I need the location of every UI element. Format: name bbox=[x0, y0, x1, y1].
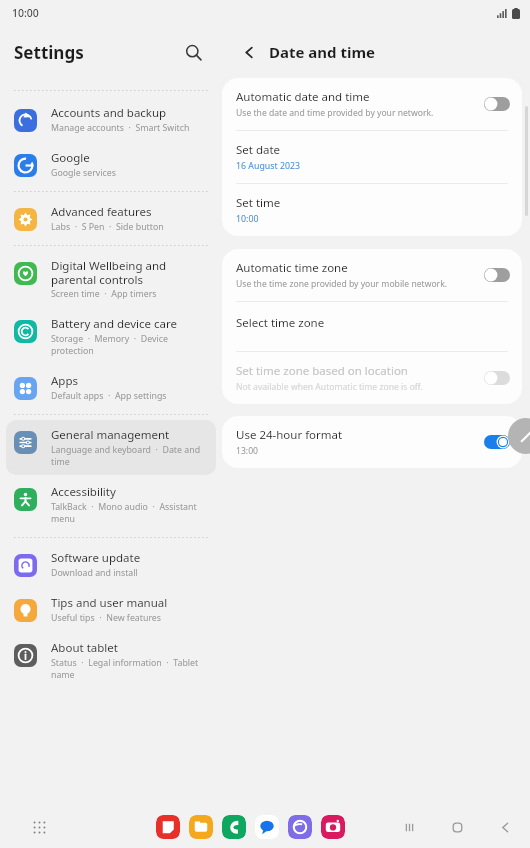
button[interactable]: messages bbox=[255, 815, 279, 839]
staticText: Default apps · App settings bbox=[51, 390, 167, 402]
staticText: TalkBack · Mono audio · Assistant menu bbox=[51, 501, 208, 525]
staticText: About tablet bbox=[51, 640, 118, 656]
button[interactable]: files bbox=[189, 815, 213, 839]
staticText: Use the date and time provided by your n… bbox=[236, 107, 434, 119]
button[interactable]: Accessibility bbox=[6, 477, 216, 532]
button[interactable]: Edit bbox=[508, 418, 530, 454]
button[interactable]: recents bbox=[396, 814, 422, 840]
staticText: Storage · Memory · Device protection bbox=[51, 333, 208, 357]
staticText: Accessibility bbox=[51, 484, 116, 500]
staticText: Language and keyboard · Date and time bbox=[51, 444, 208, 468]
button[interactable]: Battery and device care bbox=[6, 309, 216, 364]
staticText: Set time zone based on location bbox=[236, 363, 408, 379]
staticText: 16 August 2023 bbox=[236, 160, 301, 172]
button[interactable]: back bbox=[492, 814, 518, 840]
button[interactable]: camera bbox=[321, 815, 345, 839]
button[interactable]: Set time bbox=[222, 184, 522, 236]
staticText: Labs · S Pen · Side button bbox=[51, 221, 164, 233]
staticText: Status · Legal information · Tablet name bbox=[51, 657, 208, 681]
staticText: Not available when Automatic time zone i… bbox=[236, 381, 423, 393]
button[interactable]: Advanced features bbox=[6, 197, 216, 240]
staticText: Battery and device care bbox=[51, 316, 178, 332]
button[interactable]: Automatic date and time bbox=[222, 78, 522, 130]
button[interactable]: Software update bbox=[6, 543, 216, 586]
button[interactable]: All apps bbox=[26, 814, 52, 840]
staticText: Settings bbox=[14, 41, 84, 64]
button[interactable]: About tablet bbox=[6, 633, 216, 688]
button[interactable]: notes bbox=[156, 815, 180, 839]
button[interactable]: Apps bbox=[6, 366, 216, 409]
button[interactable]: General management bbox=[6, 420, 216, 475]
staticText: Set time bbox=[236, 195, 281, 211]
staticText: 13:00 bbox=[236, 445, 258, 457]
staticText: Date and time bbox=[269, 42, 376, 62]
staticText: Automatic time zone bbox=[236, 260, 348, 276]
staticText: Download and install bbox=[51, 567, 138, 579]
staticText: Google services bbox=[51, 167, 116, 179]
button[interactable]: phone bbox=[222, 815, 246, 839]
staticText: Tips and user manual bbox=[51, 595, 168, 611]
staticText: 10:00 bbox=[12, 6, 39, 20]
button[interactable]: Accounts and backup bbox=[6, 98, 216, 141]
staticText: Google bbox=[51, 150, 90, 166]
staticText: Accounts and backup bbox=[51, 105, 167, 121]
button[interactable]: Select time zone bbox=[222, 302, 522, 351]
button[interactable]: Google bbox=[6, 143, 216, 186]
staticText: Select time zone bbox=[236, 315, 325, 331]
button[interactable]: Back bbox=[234, 37, 264, 67]
staticText: Useful tips · New features bbox=[51, 612, 162, 624]
button[interactable]: Tips and user manual bbox=[6, 588, 216, 631]
staticText: Use 24-hour format bbox=[236, 427, 343, 443]
button[interactable]: internet bbox=[288, 815, 312, 839]
staticText: Manage accounts · Smart Switch bbox=[51, 122, 190, 134]
staticText: Advanced features bbox=[51, 204, 152, 220]
staticText: Screen time · App timers bbox=[51, 288, 157, 300]
staticText: 10:00 bbox=[236, 213, 259, 225]
button[interactable]: Use 24-hour format bbox=[222, 416, 522, 468]
staticText: Automatic date and time bbox=[236, 89, 370, 105]
staticText: Apps bbox=[51, 373, 79, 389]
button[interactable]: Set time zone based on location bbox=[222, 352, 522, 404]
button[interactable]: Automatic time zone bbox=[222, 249, 522, 301]
staticText: Use the time zone provided by your mobil… bbox=[236, 278, 448, 290]
button[interactable]: Set date bbox=[222, 131, 522, 183]
button[interactable]: Digital Wellbeing and parental controls bbox=[6, 251, 216, 307]
staticText: Digital Wellbeing and parental controls bbox=[51, 258, 208, 287]
staticText: Set date bbox=[236, 142, 281, 158]
button[interactable]: Search bbox=[176, 35, 210, 69]
staticText: Software update bbox=[51, 550, 141, 566]
staticText: General management bbox=[51, 427, 170, 443]
button[interactable]: home bbox=[444, 814, 470, 840]
